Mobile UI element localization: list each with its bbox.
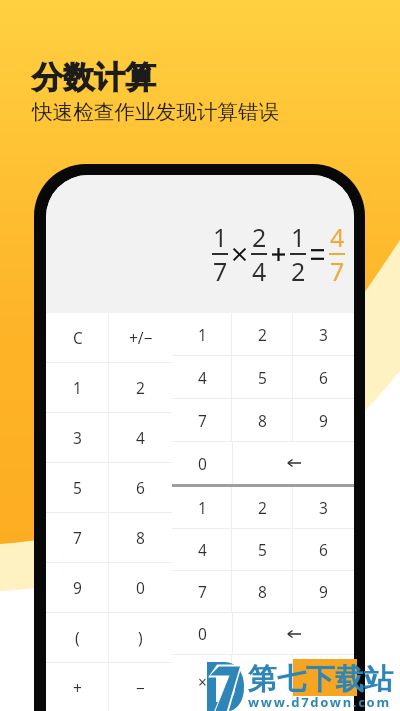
button[interactable]: 2 <box>109 363 172 412</box>
staticText: 9 <box>319 581 328 602</box>
button[interactable]: 6 <box>293 529 354 570</box>
staticText: 3 <box>73 427 82 448</box>
button[interactable]: 0 <box>172 442 233 484</box>
staticText: ) <box>138 627 143 648</box>
button[interactable]: Backspace <box>233 442 354 484</box>
staticText: 4 <box>198 539 207 560</box>
button[interactable]: 3 <box>46 413 109 462</box>
staticText: 3 <box>319 324 328 345</box>
button[interactable]: 5 <box>232 356 293 398</box>
button[interactable]: ) <box>109 613 172 662</box>
staticText: 8 <box>136 527 145 548</box>
staticText: 5 <box>73 477 82 498</box>
staticText: 7 <box>198 581 207 602</box>
staticText: 1 <box>198 497 207 518</box>
staticText: 快速检查作业发现计算错误 <box>32 99 280 125</box>
button[interactable]: × <box>172 655 232 707</box>
button[interactable]: 9 <box>293 571 354 612</box>
button[interactable]: 4 <box>172 356 232 398</box>
button[interactable]: +/− <box>109 313 172 362</box>
button[interactable]: 7 <box>46 513 109 562</box>
button[interactable] <box>232 655 293 707</box>
staticText: 8 <box>258 581 267 602</box>
staticText: 1 <box>198 324 207 345</box>
staticText: 2 <box>258 324 267 345</box>
button[interactable]: 3 <box>293 487 354 528</box>
button[interactable]: 8 <box>232 399 293 441</box>
button[interactable]: Backspace <box>233 613 354 654</box>
button[interactable]: 6 <box>109 463 172 512</box>
staticText: 5 <box>258 367 267 388</box>
button[interactable]: 5 <box>46 463 109 512</box>
staticText: 7 <box>330 254 345 288</box>
staticText: ( <box>75 627 80 648</box>
staticText: + <box>73 677 82 698</box>
staticText: 5 <box>258 539 267 560</box>
staticText: 9 <box>73 577 82 598</box>
staticText: 0 <box>198 453 207 474</box>
button[interactable] <box>293 655 354 707</box>
button[interactable]: 5 <box>232 529 293 570</box>
staticText: 6 <box>319 367 328 388</box>
button[interactable]: 1 <box>172 487 232 528</box>
staticText: 4 <box>136 427 145 448</box>
button[interactable]: 3 <box>293 313 354 355</box>
button[interactable]: 1 <box>172 313 232 355</box>
button[interactable]: 6 <box>293 356 354 398</box>
button[interactable]: ( <box>46 613 109 662</box>
staticText: 3 <box>319 497 328 518</box>
staticText: 9 <box>319 410 328 431</box>
button[interactable]: 9 <box>293 399 354 441</box>
staticText: 2 <box>252 220 267 254</box>
staticText: 0 <box>136 577 145 598</box>
button[interactable]: 9 <box>46 563 109 612</box>
button[interactable]: 1 <box>46 363 109 412</box>
staticText: − <box>136 677 145 698</box>
staticText: www.d7down.com <box>248 693 391 711</box>
staticText: 分数计算 <box>32 58 156 97</box>
staticText: 第七下载站 <box>248 661 393 698</box>
staticText: 1 <box>213 220 228 254</box>
button[interactable]: 8 <box>109 513 172 562</box>
staticText: 4 <box>198 367 207 388</box>
staticText: 4 <box>330 220 345 254</box>
staticText: 6 <box>319 539 328 560</box>
button[interactable]: C <box>46 313 109 362</box>
button[interactable]: 7 <box>172 399 232 441</box>
button[interactable]: 4 <box>109 413 172 462</box>
staticText: × <box>198 671 207 692</box>
staticText: 4 <box>252 254 267 288</box>
staticText: 1 <box>291 220 306 254</box>
staticText: 1 <box>73 377 82 398</box>
button[interactable]: 8 <box>232 571 293 612</box>
staticText: 0 <box>198 623 207 644</box>
button[interactable]: 2 <box>232 313 293 355</box>
button[interactable]: 0 <box>109 563 172 612</box>
button[interactable]: 4 <box>172 529 232 570</box>
staticText: 8 <box>258 410 267 431</box>
button[interactable]: + <box>46 663 109 711</box>
staticText: 7 <box>73 527 82 548</box>
staticText: 6 <box>136 477 145 498</box>
staticText: +/− <box>129 327 153 348</box>
staticText: 2 <box>291 254 306 288</box>
staticText: 7 <box>198 410 207 431</box>
staticText: 2 <box>258 497 267 518</box>
button[interactable]: 0 <box>172 613 233 654</box>
button[interactable]: 7 <box>172 571 232 612</box>
button[interactable]: − <box>109 663 172 711</box>
staticText: 2 <box>136 377 145 398</box>
staticText: C <box>73 327 83 348</box>
staticText: 7 <box>213 254 228 288</box>
button[interactable]: 2 <box>232 487 293 528</box>
